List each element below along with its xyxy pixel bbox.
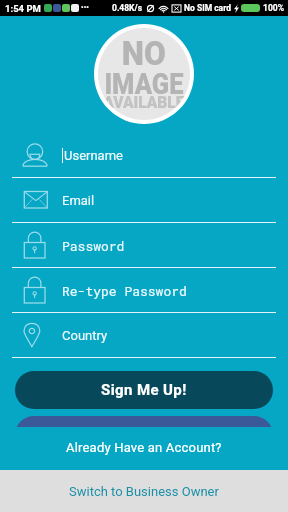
staticText: 1:54 PM [5,3,41,14]
button[interactable]: Already Have an Account? [0,427,288,470]
staticText: NO [122,33,166,73]
staticText: Sign Me Up! [101,381,187,399]
staticText: Already Have an Account? [66,440,222,455]
button[interactable]: Password [0,223,288,268]
staticText: Username [64,148,123,163]
staticText: No SIM card [184,3,231,13]
staticText: AVAILABLE [103,93,185,112]
button[interactable]: Country [0,313,288,358]
staticText: Switch to Business Owner [69,484,219,499]
button[interactable]: Sign Up With Facebook [15,416,273,427]
staticText: Country [62,328,108,343]
button[interactable]: Switch to Business Owner [0,470,288,512]
button[interactable]: Sign Me Up! [15,371,273,409]
button[interactable]: Username [0,133,288,178]
button[interactable]: Add profile photo [98,28,190,120]
staticText: 100% [263,3,284,13]
staticText: Email [62,193,95,208]
button[interactable]: Re-type Password [0,268,288,313]
staticText: IMAGE [104,67,184,101]
staticText: Re-type Password [62,282,187,299]
button[interactable]: Email [0,178,288,223]
staticText: 0.48K/s [112,3,143,13]
staticText: Password [62,237,125,254]
staticText: ••• [81,3,89,13]
